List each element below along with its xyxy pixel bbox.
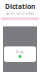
staticText: Tap the mic to dictate [5,12,34,15]
staticText: Dictation [5,2,35,11]
staticText: Ready [16,50,24,54]
button[interactable] [1,17,39,20]
